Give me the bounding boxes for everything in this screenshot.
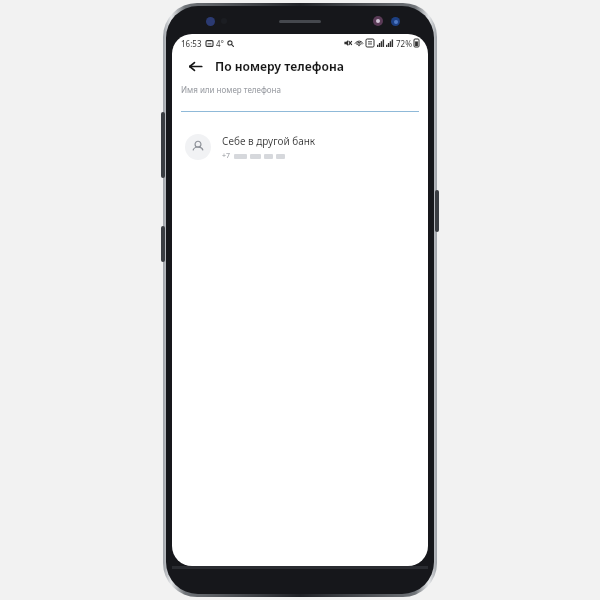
staticText: Имя или номер телефона bbox=[181, 84, 281, 95]
button[interactable]: Себе в другой банк bbox=[172, 124, 428, 170]
staticText: 16:53 bbox=[181, 38, 202, 49]
staticText: 72% bbox=[396, 38, 412, 49]
button[interactable]: Имя или номер телефона bbox=[172, 80, 428, 112]
staticText: 4° bbox=[216, 38, 224, 49]
staticText: +7 bbox=[222, 151, 231, 161]
button[interactable]: Назад bbox=[185, 56, 205, 76]
staticText: По номеру телефона bbox=[215, 58, 344, 74]
staticText: Себе в другой банк bbox=[222, 134, 316, 148]
